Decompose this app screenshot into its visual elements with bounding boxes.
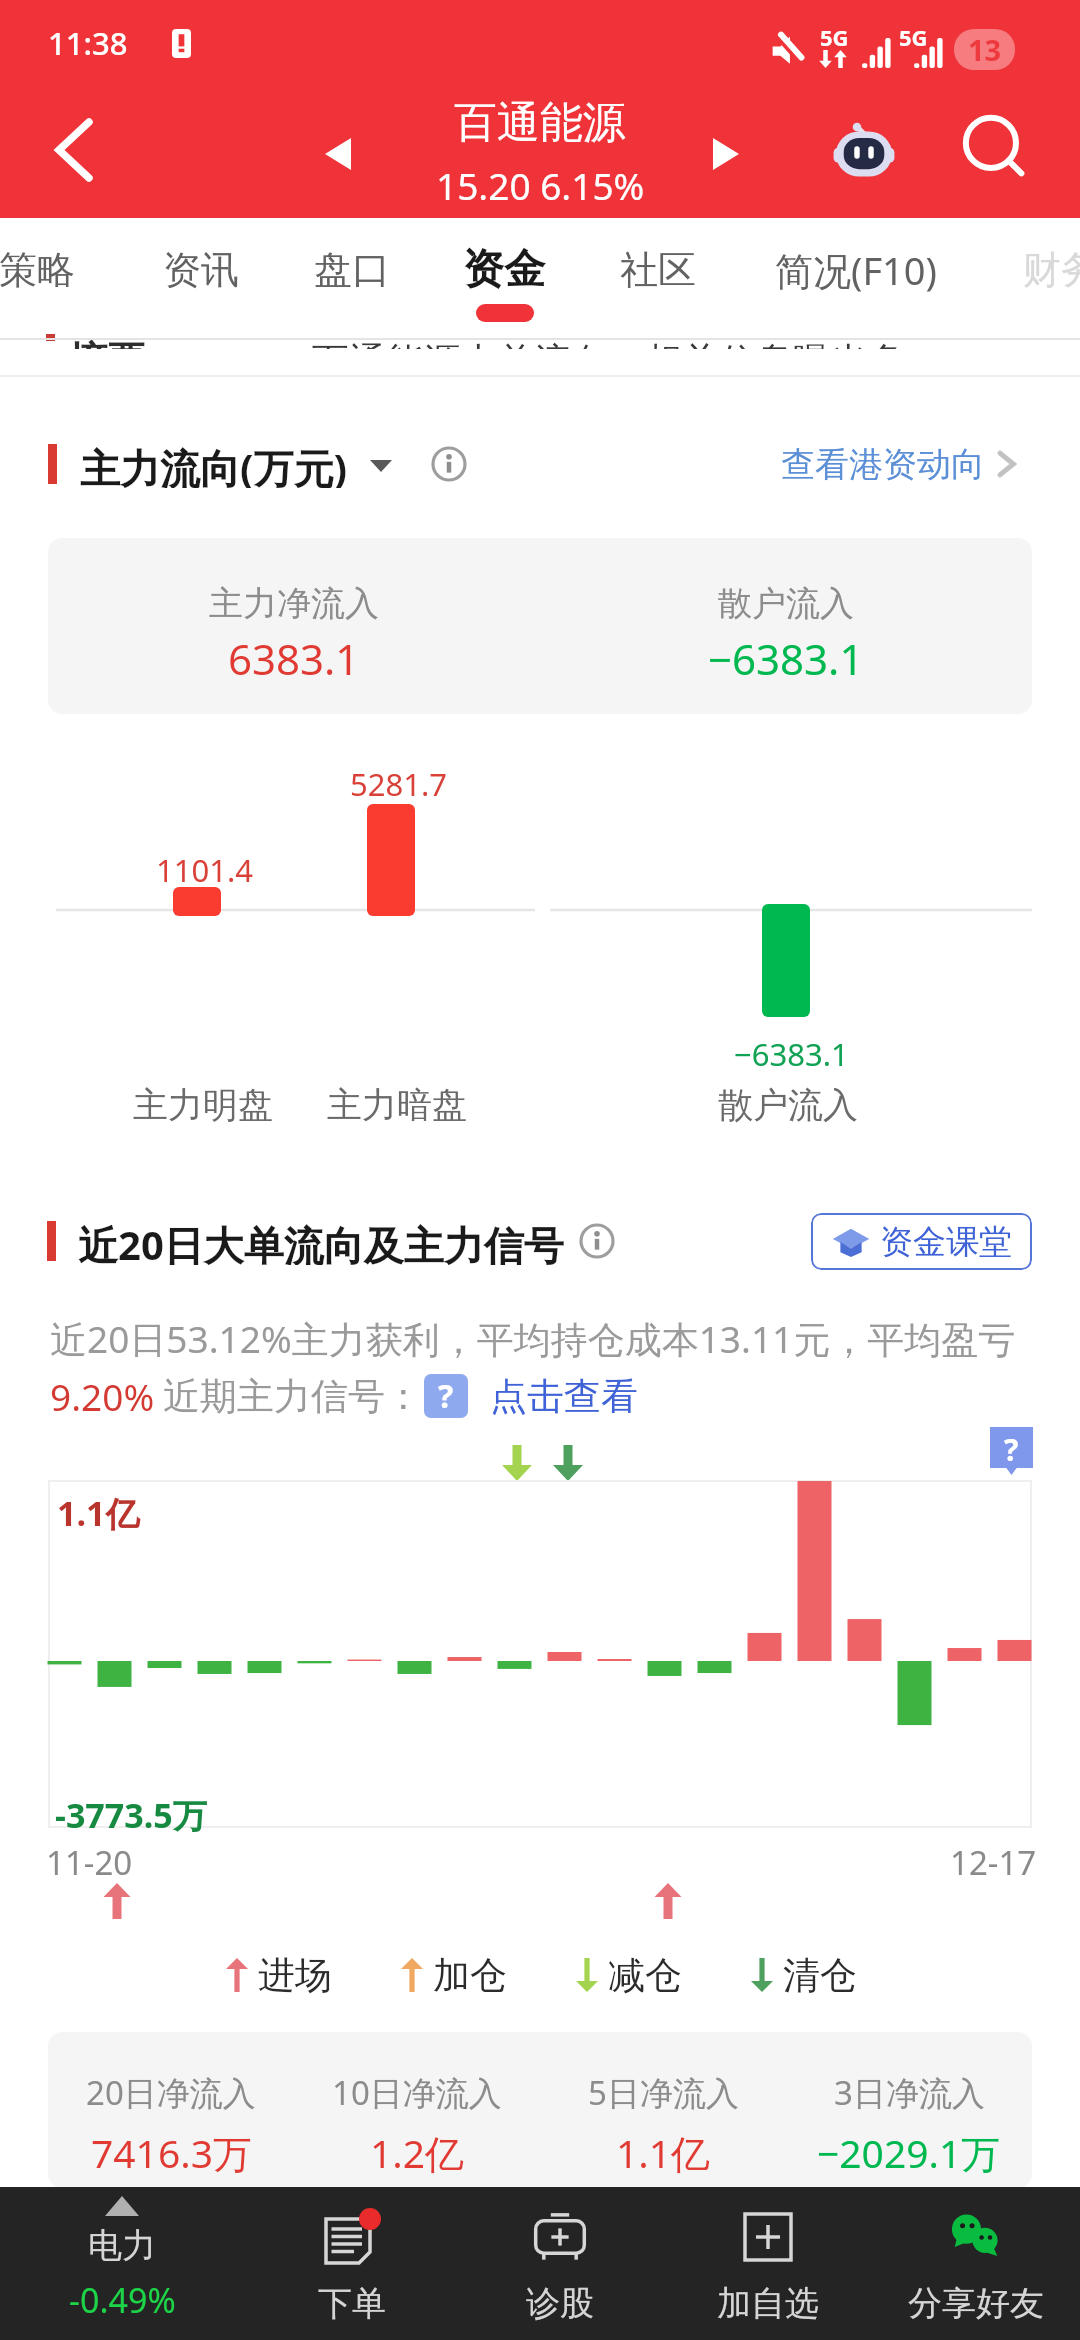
staticText: 11:38 [48,22,128,64]
staticText: 分享好友 [908,2282,1044,2325]
button[interactable]: Search [949,105,1045,193]
staticText: 加自选 [717,2282,819,2325]
staticText: 策略 [0,246,75,294]
staticText: 1101.4 [156,849,253,891]
button[interactable]: AI assistant [812,110,916,198]
staticText: 13 [968,30,1002,69]
staticText: 主力暗盘 [327,1083,467,1127]
staticText: 1.2亿 [370,2126,465,2179]
button[interactable]: 资金课堂 [811,1213,1032,1270]
staticText: 百通能源 [454,96,626,150]
staticText: ? [438,1374,454,1418]
staticText: 近20日大单流向及主力信号 [78,1217,564,1265]
staticText: 1.1亿 [616,2126,711,2179]
staticText: 近20日53.12%主力获利，平均持仓成本13.11元，平均盈亏 [50,1313,1016,1364]
staticText: -0.49% [69,2277,176,2323]
staticText: −2029.1万 [817,2126,1001,2179]
staticText: 12-17 [950,1840,1037,1885]
button[interactable]: 加仓 [401,1952,507,1998]
staticText: 6383.1 [228,630,360,687]
staticText: 减仓 [608,1952,682,1998]
button[interactable]: 10日净流入 [294,2032,540,2188]
button[interactable]: Previous stock [300,118,376,190]
staticText: 资金 [463,244,545,296]
staticText: 下单 [318,2282,386,2325]
button[interactable]: 进场 [226,1952,332,1998]
staticText: 散户流入 [718,1083,858,1127]
button[interactable]: 电力 [18,2187,226,2340]
button[interactable]: About large order flow [568,1217,626,1265]
button[interactable]: 资金 [444,218,563,330]
staticText: 进场 [258,1952,332,1998]
button[interactable]: Next stock [688,118,764,190]
staticText: 诊股 [526,2282,594,2325]
staticText: 清仓 [783,1952,857,1998]
staticText: 5G [820,22,849,52]
staticText: 15.20 6.15% [436,160,645,210]
staticText: 简况(F10) [775,244,937,296]
button[interactable]: 主力流向(万元) [80,440,392,488]
staticText: 社区 [620,246,696,294]
staticText: 5G [899,22,928,52]
staticText: −6383.1 [734,1033,849,1075]
button[interactable]: 散户流入 [540,538,1032,714]
staticText: −6383.1 [708,630,864,687]
staticText: 盘口 [314,246,390,294]
button[interactable]: 策略 [0,218,93,330]
staticText: 20日净流入 [86,2070,256,2115]
staticText: 摘要 [68,336,146,349]
staticText: 11-20 [46,1840,133,1885]
button[interactable]: 下单 [248,2187,456,2340]
staticText: 点击查看 [490,1373,638,1420]
button[interactable]: 财务 [1004,218,1080,330]
staticText: 百通能源大单流向，相关信息曝光多 [312,338,904,349]
button[interactable]: 资讯 [144,218,257,330]
staticText: 5日净流入 [588,2070,739,2115]
staticText: 5281.7 [350,763,447,805]
staticText: 主力流向(万元) [80,440,348,488]
button[interactable]: 减仓 [576,1952,682,1998]
staticText: 散户流入 [718,582,854,625]
button[interactable]: 社区 [601,218,714,330]
button[interactable]: 分享好友 [872,2187,1080,2340]
button[interactable]: 加自选 [664,2187,872,2340]
button[interactable]: Back [28,104,120,196]
staticText: 资金课堂 [880,1221,1012,1263]
staticText: 7416.3万 [91,2126,252,2179]
staticText: ? [1004,1429,1019,1470]
staticText: 电力 [88,2224,156,2267]
button[interactable]: 简况(F10) [699,218,1013,330]
staticText: 资讯 [163,246,239,294]
staticText: 加仓 [433,1952,507,1998]
button[interactable]: 20日净流入 [48,2032,294,2188]
button[interactable]: 5日净流入 [540,2032,786,2188]
button[interactable]: 盘口 [295,218,408,330]
button[interactable]: Chart help [990,1427,1033,1475]
staticText: 9.20% [50,1371,155,1421]
staticText: 近期主力信号： [163,1373,422,1420]
staticText: -3773.5万 [55,1792,207,1838]
staticText: 3日净流入 [834,2070,985,2115]
button[interactable]: 3日净流入 [786,2032,1032,2188]
button[interactable]: 清仓 [751,1952,857,1998]
button[interactable]: 诊股 [456,2187,664,2340]
button[interactable]: 查看港资动向 [781,440,1017,488]
button[interactable]: About main capital flow [420,440,478,488]
button[interactable]: 主力净流入 [48,538,540,714]
staticText: 主力净流入 [209,582,379,625]
staticText: 1.1亿 [57,1490,140,1536]
staticText: 查看港资动向 [781,443,985,486]
button[interactable]: 点击查看 [490,1373,638,1420]
staticText: 10日净流入 [332,2070,502,2115]
staticText: 财务 [1023,246,1080,294]
staticText: 主力明盘 [133,1083,273,1127]
